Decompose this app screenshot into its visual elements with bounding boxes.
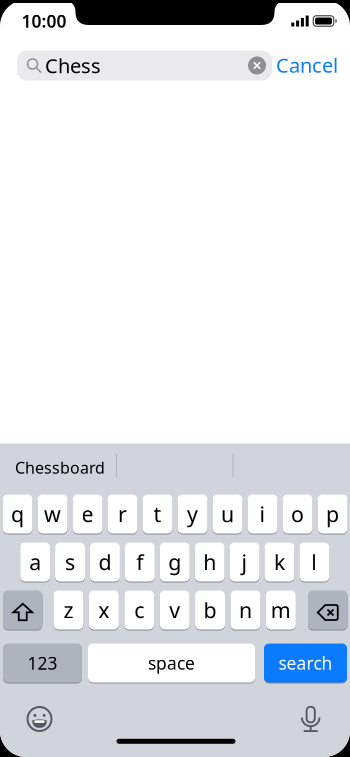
button[interactable]: search — [264, 643, 347, 683]
button[interactable]: f — [125, 542, 155, 582]
button[interactable]: 123 — [3, 643, 82, 683]
button[interactable]: d — [90, 542, 120, 582]
button[interactable]: s — [55, 542, 85, 582]
button[interactable]: Dictate — [298, 705, 324, 733]
staticText: 10:00 — [21, 9, 66, 32]
staticText: f — [136, 548, 143, 576]
staticText: d — [98, 548, 111, 576]
staticText: o — [291, 500, 304, 528]
button[interactable]: y — [178, 494, 207, 534]
button[interactable]: o — [283, 494, 312, 534]
button[interactable]: z — [53, 590, 83, 630]
button[interactable]: e — [73, 494, 102, 534]
button[interactable]: j — [230, 542, 259, 582]
staticText: h — [203, 548, 216, 576]
staticText: q — [11, 500, 24, 528]
button[interactable]: w — [38, 494, 67, 534]
staticText: x — [98, 596, 109, 624]
staticText: a — [29, 548, 41, 576]
button[interactable]: t — [143, 494, 172, 534]
staticText: 123 — [27, 651, 57, 674]
staticText: w — [44, 500, 61, 528]
button[interactable]: h — [195, 542, 225, 582]
staticText: c — [134, 596, 144, 624]
staticText: k — [274, 548, 285, 576]
button[interactable]: Shift — [3, 590, 42, 630]
button[interactable]: m — [266, 590, 296, 630]
button[interactable]: p — [318, 494, 347, 534]
staticText: i — [260, 500, 266, 528]
button[interactable]: r — [108, 494, 137, 534]
staticText: p — [326, 500, 339, 528]
button[interactable]: Chessboard — [5, 447, 115, 487]
button[interactable]: v — [160, 590, 190, 630]
button[interactable]: k — [264, 542, 294, 582]
staticText: z — [63, 596, 73, 624]
staticText: Chessboard — [15, 457, 105, 478]
button[interactable]: n — [230, 590, 260, 630]
staticText: u — [221, 500, 234, 528]
staticText: g — [168, 548, 181, 576]
button[interactable]: g — [160, 542, 190, 582]
staticText: m — [271, 596, 291, 624]
button[interactable]: x — [89, 590, 119, 630]
button[interactable]: Emoji — [25, 705, 53, 733]
staticText: t — [153, 500, 161, 528]
button[interactable]: space — [88, 643, 255, 683]
staticText: search — [278, 651, 332, 674]
button[interactable]: l — [299, 542, 329, 582]
staticText: Chess — [45, 52, 101, 79]
staticText: e — [81, 500, 93, 528]
button[interactable]: Cancel — [276, 52, 338, 78]
staticText: Cancel — [276, 52, 338, 78]
staticText: y — [187, 500, 198, 528]
button[interactable]: a — [20, 542, 50, 582]
staticText: j — [241, 548, 247, 576]
button[interactable]: b — [195, 590, 225, 630]
staticText: r — [118, 500, 127, 528]
staticText: v — [169, 596, 180, 624]
button[interactable]: q — [3, 494, 32, 534]
button[interactable]: c — [124, 590, 154, 630]
button[interactable]: Delete — [308, 590, 347, 630]
staticText: space — [148, 651, 195, 674]
staticText: l — [311, 548, 317, 576]
button[interactable]: Clear text — [246, 54, 268, 76]
staticText: n — [239, 596, 252, 624]
staticText: s — [65, 548, 75, 576]
staticText: b — [203, 596, 216, 624]
button[interactable]: i — [248, 494, 277, 534]
button[interactable]: u — [213, 494, 242, 534]
